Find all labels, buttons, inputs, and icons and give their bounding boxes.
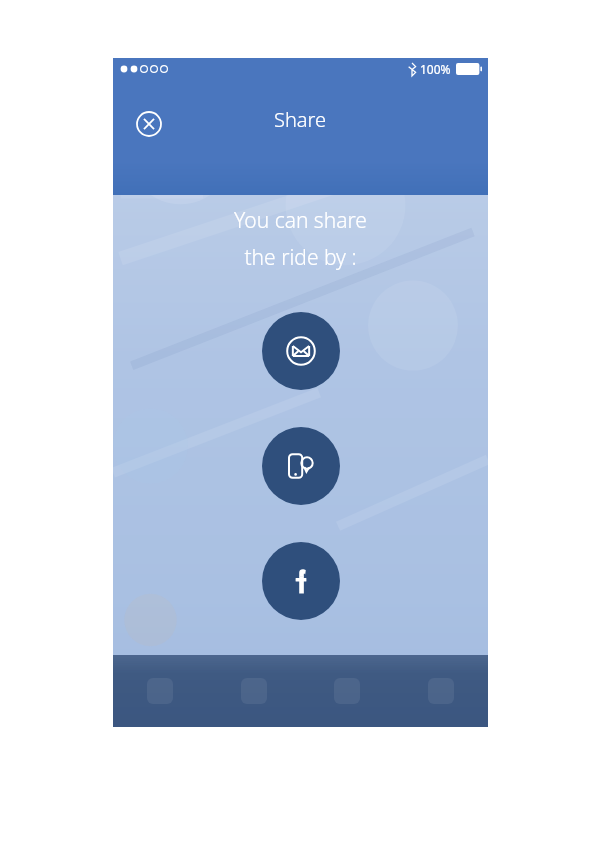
staticText: Share <box>274 106 327 133</box>
staticText: 100% <box>420 61 451 77</box>
button[interactable]: Share by message <box>262 427 340 505</box>
button[interactable]: Share by email <box>262 312 340 390</box>
staticText: the ride by : <box>244 243 357 272</box>
button[interactable]: Share on Facebook <box>262 542 340 620</box>
staticText: You can share <box>234 206 367 235</box>
button[interactable]: Close <box>127 102 171 146</box>
